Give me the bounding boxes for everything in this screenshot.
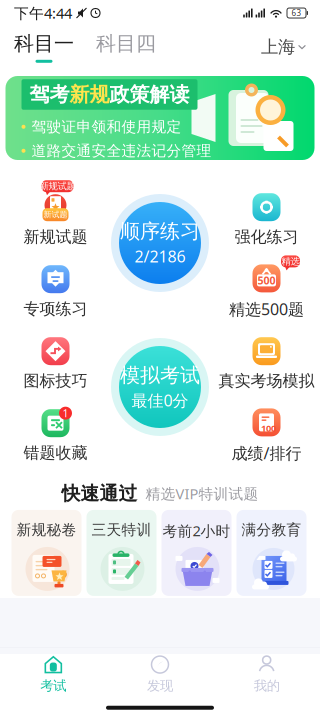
button[interactable]: 模拟考试 [111,338,209,436]
staticText: 发现 [147,678,173,694]
staticText: 驾考 [29,82,69,107]
button[interactable]: 满分教育 [236,510,306,596]
button[interactable]: 顺序练习 [111,194,209,292]
button[interactable]: 发现 [107,655,213,694]
staticText: 道路交通安全违法记分管理 [31,142,211,160]
staticText: 顺序练习 [120,219,200,244]
staticText: 最佳0分 [131,390,188,411]
staticText: 下午4:44 [14,3,72,23]
staticText: 新规试题 [39,180,75,192]
button[interactable]: 新规秘卷 [11,510,81,596]
button[interactable]: 科目四 [85,26,167,68]
staticText: 专项练习 [23,299,87,319]
staticText: 100 [261,422,276,434]
button[interactable]: 100 [214,412,318,460]
button[interactable]: 真实考场模拟 [214,340,318,388]
button[interactable]: 新试题 [3,196,107,244]
staticText: 真实考场模拟 [218,371,314,391]
staticText: 上海 [261,36,295,58]
staticText: 科目一 [14,31,74,56]
button[interactable]: 科目一 [0,26,85,68]
staticText: 错题收藏 [23,443,87,463]
staticText: 图标技巧 [23,371,87,391]
staticText: 我的 [254,678,280,694]
staticText: 1 [62,406,68,420]
staticText: 考试 [40,678,66,694]
staticText: 考前2小时 [162,521,230,540]
staticText: 强化练习 [234,227,298,247]
staticText: 新规秘卷 [16,521,76,539]
button[interactable]: 考试 [0,655,107,694]
staticText: 500 [257,273,275,287]
button[interactable]: 三天特训 [86,510,156,596]
staticText: 精选500题 [229,298,304,320]
staticText: 新试题 [43,210,67,220]
staticText: 成绩/排行 [231,442,301,464]
staticText: 政策解读 [109,82,189,107]
button[interactable]: 专项练习 [3,268,107,316]
staticText: 模拟考试 [120,363,200,388]
staticText: 精选VIP特训试题 [145,484,258,503]
staticText: 科目四 [96,31,156,56]
staticText: 三天特训 [91,521,151,539]
button[interactable]: 考前2小时 [161,510,231,596]
staticText: 2/2186 [134,246,185,267]
button[interactable]: 上海 [261,28,320,66]
button[interactable]: 1 [3,412,107,460]
button[interactable]: 我的 [213,655,320,694]
staticText: 满分教育 [241,521,301,539]
button[interactable]: 500 [214,268,318,316]
button[interactable]: 驾考 [5,76,314,160]
staticText: 快速通过 [61,482,137,505]
staticText: 驾驶证申领和使用规定 [31,118,181,136]
button[interactable]: 图标技巧 [3,340,107,388]
staticText: 新规试题 [23,227,87,247]
button[interactable]: 强化练习 [214,196,318,244]
staticText: 63 [291,8,301,18]
staticText: 精选 [281,256,299,267]
staticText: 新规 [69,82,109,107]
